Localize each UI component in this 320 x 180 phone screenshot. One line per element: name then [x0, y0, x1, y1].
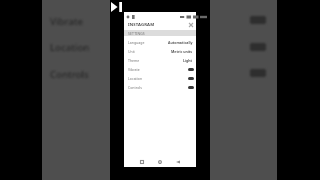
staticText: Light: [183, 58, 193, 63]
button[interactable]: Home: [154, 156, 165, 167]
staticText: INSTAGRAM: [128, 22, 155, 28]
staticText: Location: [128, 76, 143, 81]
staticText: Vibrate: [128, 67, 140, 72]
button[interactable]: Theme: [124, 56, 196, 65]
staticText: Vibrate: [50, 15, 83, 28]
staticText: Theme: [128, 58, 140, 63]
button[interactable]: INSTAGRAM: [124, 19, 196, 30]
staticText: SETTINGS: [128, 31, 145, 36]
staticText: Language: [128, 40, 145, 45]
button[interactable]: Recents: [136, 156, 147, 167]
button[interactable]: Skip next: [109, 0, 123, 13]
staticText: Location: [50, 41, 90, 54]
staticText: Unit: [128, 49, 135, 54]
button[interactable]: Controls: [124, 83, 196, 92]
button[interactable]: Language: [124, 38, 196, 47]
other: Close: [189, 23, 193, 27]
staticText: Controls: [50, 68, 89, 81]
button[interactable]: Vibrate: [124, 65, 196, 74]
staticText: Metric units: [171, 49, 193, 54]
button[interactable]: Unit: [124, 47, 196, 56]
button[interactable]: Location: [124, 74, 196, 83]
button[interactable]: Back: [172, 156, 183, 167]
staticText: Controls: [128, 85, 142, 90]
staticText: Automatically: [168, 40, 193, 45]
